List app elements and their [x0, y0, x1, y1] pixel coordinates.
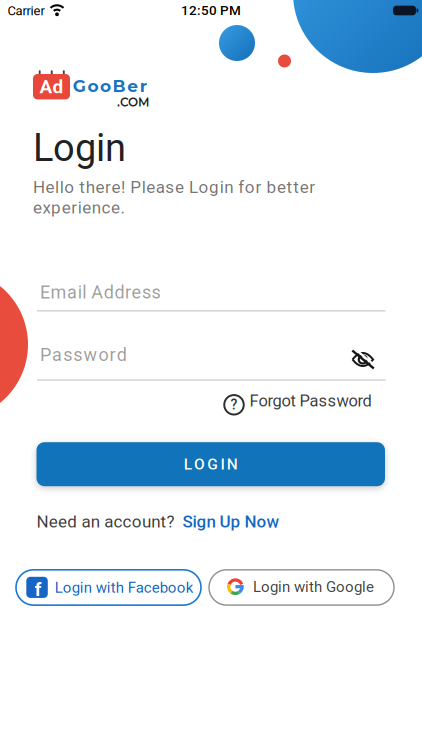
staticText: I [221, 455, 225, 473]
staticText: GooBer [73, 76, 147, 96]
staticText: Hello there! Please Login for better [33, 177, 315, 197]
staticText: .COM [117, 95, 149, 109]
staticText: experience. [33, 198, 124, 218]
staticText: L [184, 455, 192, 473]
staticText: N [227, 455, 238, 473]
staticText: Forgot Password [249, 391, 371, 411]
staticText: Need an account? [37, 512, 175, 532]
staticText: f [35, 578, 42, 601]
staticText: Login with Google [253, 578, 374, 596]
staticText: Password [40, 344, 127, 365]
staticText: O [194, 455, 205, 473]
staticText: Email Address [40, 282, 161, 303]
staticText: G [207, 455, 218, 473]
staticText: Sign Up Now [183, 512, 280, 532]
staticText: ? [230, 397, 237, 413]
staticText: 12:50 PM [181, 2, 241, 18]
staticText: Ad [39, 76, 63, 98]
staticText: Carrier [7, 3, 44, 18]
staticText: Login with Facebook [55, 579, 194, 596]
staticText: Login [33, 126, 126, 170]
